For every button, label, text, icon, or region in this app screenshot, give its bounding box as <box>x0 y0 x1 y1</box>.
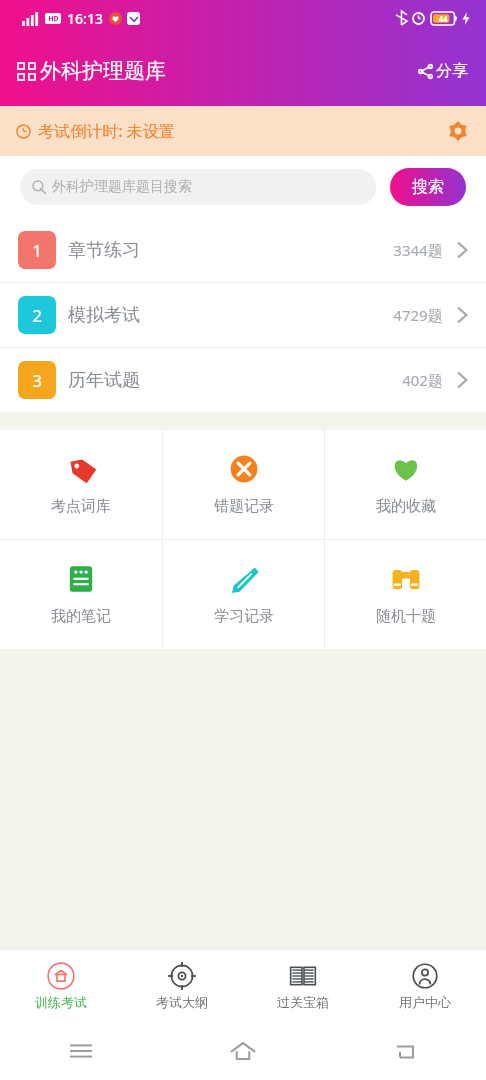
button[interactable]: Recents <box>56 1030 106 1072</box>
staticText: 16:13 <box>67 9 103 28</box>
staticText: HD <box>48 14 59 24</box>
staticText: 过关宝箱 <box>277 994 329 1010</box>
staticText: 章节练习 <box>68 239 140 262</box>
button[interactable]: 考试倒计时: 未设置 <box>0 106 486 156</box>
button[interactable]: 外科护理题库题目搜索 <box>20 169 376 205</box>
staticText: 随机十题 <box>376 607 436 626</box>
button[interactable]: 学习记录 <box>163 540 324 649</box>
button[interactable]: 3 <box>0 348 486 412</box>
button[interactable]: 分享 <box>400 51 486 91</box>
button[interactable]: 训练考试 <box>0 950 121 1022</box>
staticText: 考点词库 <box>51 497 111 516</box>
staticText: 3 <box>32 369 42 392</box>
staticText: 外科护理题库题目搜索 <box>52 178 192 196</box>
button[interactable]: 1 <box>0 218 486 282</box>
button[interactable]: 考试大纲 <box>121 950 242 1022</box>
staticText: 错题记录 <box>214 497 274 516</box>
staticText: 历年试题 <box>68 369 140 392</box>
button[interactable]: 随机十题 <box>325 540 486 649</box>
button[interactable]: 考点词库 <box>0 430 162 539</box>
staticText: 模拟考试 <box>68 304 140 327</box>
button[interactable]: 搜索 <box>390 168 466 206</box>
staticText: 402题 <box>402 370 443 390</box>
staticText: 2 <box>32 304 42 327</box>
staticText: 搜索 <box>412 177 444 197</box>
staticText: 训练考试 <box>35 994 87 1010</box>
button[interactable]: Home <box>218 1030 268 1072</box>
button[interactable]: 用户中心 <box>364 950 486 1022</box>
staticText: 考试大纲 <box>156 994 208 1010</box>
staticText: 外科护理题库 <box>40 58 166 84</box>
button[interactable]: Back <box>381 1029 429 1073</box>
button[interactable]: 我的笔记 <box>0 540 162 649</box>
staticText: 用户中心 <box>399 994 451 1010</box>
button[interactable]: 设置 <box>430 109 486 153</box>
button[interactable]: 我的收藏 <box>325 430 486 539</box>
staticText: 3344题 <box>393 240 443 260</box>
button[interactable]: 2 <box>0 283 486 347</box>
staticText: 4729题 <box>393 305 443 325</box>
staticText: 1 <box>32 239 42 262</box>
staticText: 考试倒计时: 未设置 <box>38 120 175 142</box>
staticText: 分享 <box>436 61 468 81</box>
button[interactable]: 过关宝箱 <box>242 950 364 1022</box>
button[interactable]: 错题记录 <box>163 430 324 539</box>
staticText: 我的收藏 <box>376 497 436 516</box>
staticText: 学习记录 <box>214 607 274 626</box>
staticText: 我的笔记 <box>51 607 111 626</box>
staticText: 44 <box>438 13 448 24</box>
